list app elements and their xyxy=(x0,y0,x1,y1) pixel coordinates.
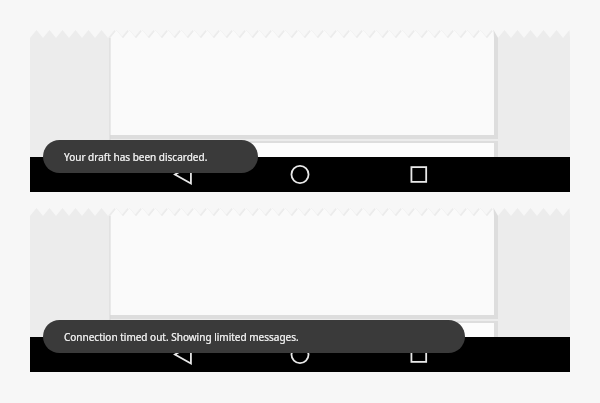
button[interactable]: Connection timed out. Showing limited me… xyxy=(43,320,465,353)
other: Snackbar example: draft discarded xyxy=(30,30,570,192)
staticText: Your draft has been discarded. xyxy=(64,150,208,164)
button[interactable]: Your draft has been discarded. xyxy=(43,140,258,173)
other: Snackbar example: connection timed out xyxy=(30,208,570,372)
staticText: Connection timed out. Showing limited me… xyxy=(64,330,299,344)
